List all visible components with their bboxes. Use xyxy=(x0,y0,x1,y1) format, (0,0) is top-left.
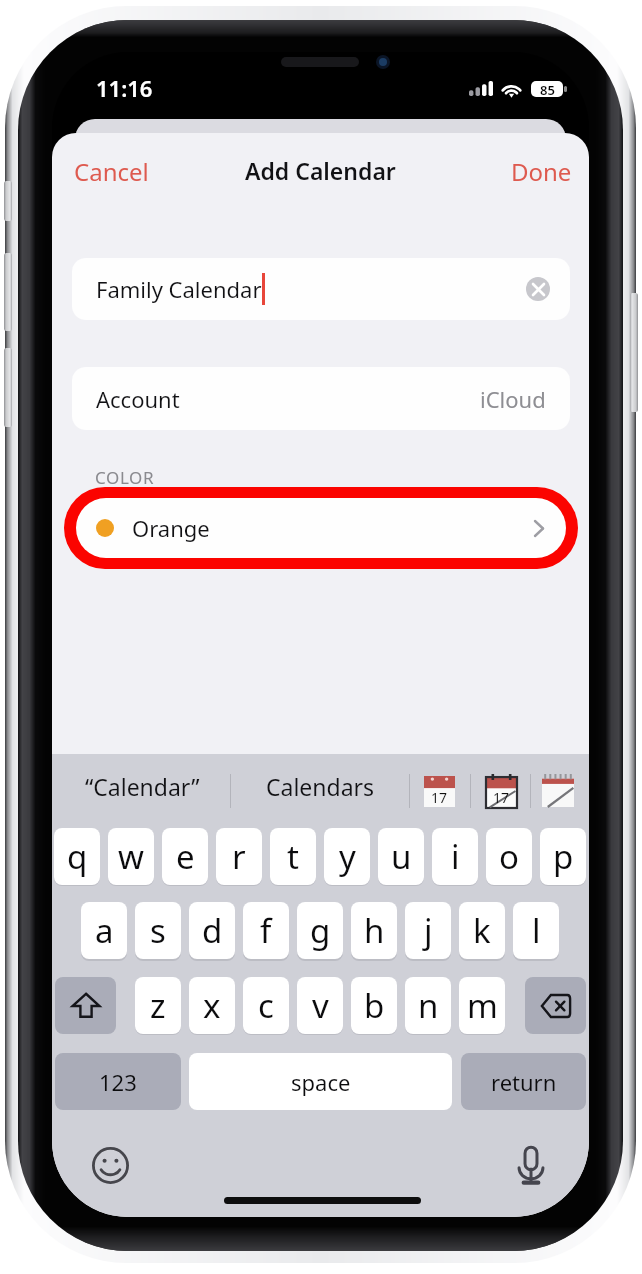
button[interactable]: h xyxy=(351,902,397,959)
button[interactable]: Done xyxy=(500,150,583,193)
button[interactable]: s xyxy=(135,902,181,959)
button[interactable]: b xyxy=(351,977,397,1034)
button[interactable]: k xyxy=(459,902,505,959)
staticText: Add Calendar xyxy=(245,155,396,186)
button[interactable]: v xyxy=(297,977,343,1034)
staticText: iCloud xyxy=(480,384,546,414)
staticText: x xyxy=(203,983,221,1028)
button[interactable]: q xyxy=(54,828,100,885)
button[interactable]: a xyxy=(81,902,127,959)
button[interactable]: Dictate xyxy=(507,1141,555,1189)
staticText: a xyxy=(95,908,114,953)
button[interactable]: f xyxy=(243,902,289,959)
button[interactable]: return xyxy=(461,1053,586,1110)
staticText: q xyxy=(67,834,88,879)
staticText: f xyxy=(260,908,272,953)
staticText: k xyxy=(473,908,491,953)
staticText: r xyxy=(232,834,246,879)
button[interactable]: Backspace xyxy=(525,977,586,1034)
button[interactable]: o xyxy=(486,828,532,885)
staticText: d xyxy=(202,908,223,953)
staticText: 17 xyxy=(493,788,510,807)
button[interactable]: Family Calendar xyxy=(72,258,570,320)
staticText: j xyxy=(424,908,433,953)
button[interactable]: g xyxy=(297,902,343,959)
button[interactable]: Cancel xyxy=(63,150,160,193)
button[interactable]: t xyxy=(270,828,316,885)
staticText: Account xyxy=(96,384,180,414)
staticText: “Calendar” xyxy=(85,771,200,802)
staticText: v xyxy=(312,983,329,1028)
staticText: o xyxy=(499,834,519,879)
button[interactable]: r xyxy=(216,828,262,885)
staticText: g xyxy=(310,908,331,953)
button[interactable]: Shift xyxy=(55,977,116,1034)
staticText: 17 xyxy=(431,788,448,807)
button[interactable]: l xyxy=(513,902,559,959)
button[interactable]: “Calendar” xyxy=(54,757,230,815)
button[interactable]: Emoji keyboard xyxy=(86,1141,134,1189)
button[interactable]: x xyxy=(189,977,235,1034)
staticText: c xyxy=(258,983,274,1028)
staticText: COLOR xyxy=(95,466,155,489)
staticText: u xyxy=(391,834,412,879)
staticText: w xyxy=(118,834,144,879)
button[interactable]: Calendar emoji xyxy=(542,774,574,807)
staticText: space xyxy=(291,1067,351,1097)
staticText: n xyxy=(418,983,439,1028)
button[interactable]: c xyxy=(243,977,289,1034)
staticText: 11:16 xyxy=(96,73,153,103)
staticText: t xyxy=(287,834,299,879)
button[interactable]: n xyxy=(405,977,451,1034)
staticText: p xyxy=(553,834,574,879)
staticText: return xyxy=(491,1067,557,1097)
staticText: i xyxy=(451,834,460,879)
staticText: e xyxy=(176,834,195,879)
button[interactable]: 123 xyxy=(55,1053,181,1110)
button[interactable]: space xyxy=(189,1053,452,1110)
button[interactable]: Orange xyxy=(76,498,566,558)
button[interactable]: Calendar emoji xyxy=(486,774,517,808)
staticText: z xyxy=(150,983,166,1028)
staticText: 123 xyxy=(99,1067,137,1097)
button[interactable]: m xyxy=(459,977,505,1034)
staticText: Orange xyxy=(132,513,210,543)
button[interactable]: w xyxy=(108,828,154,885)
staticText: 85 xyxy=(540,81,555,97)
button[interactable]: Account xyxy=(72,367,570,430)
button[interactable]: d xyxy=(189,902,235,959)
staticText: Done xyxy=(511,155,572,188)
staticText: s xyxy=(150,908,166,953)
staticText: l xyxy=(532,908,541,953)
staticText: Calendars xyxy=(266,771,375,802)
button[interactable]: y xyxy=(324,828,370,885)
staticText: Cancel xyxy=(74,155,149,188)
other: Clear text xyxy=(526,277,550,301)
staticText: b xyxy=(364,983,385,1028)
button[interactable]: i xyxy=(432,828,478,885)
button[interactable]: j xyxy=(405,902,451,959)
button[interactable]: p xyxy=(540,828,586,885)
button[interactable]: e xyxy=(162,828,208,885)
button[interactable]: u xyxy=(378,828,424,885)
staticText: m xyxy=(467,983,498,1028)
staticText: h xyxy=(364,908,385,953)
staticText: y xyxy=(339,834,356,879)
button[interactable]: Calendar emoji xyxy=(424,776,455,807)
staticText: Family Calendar xyxy=(96,274,262,304)
button[interactable]: Calendars xyxy=(231,757,409,815)
button[interactable]: z xyxy=(135,977,181,1034)
